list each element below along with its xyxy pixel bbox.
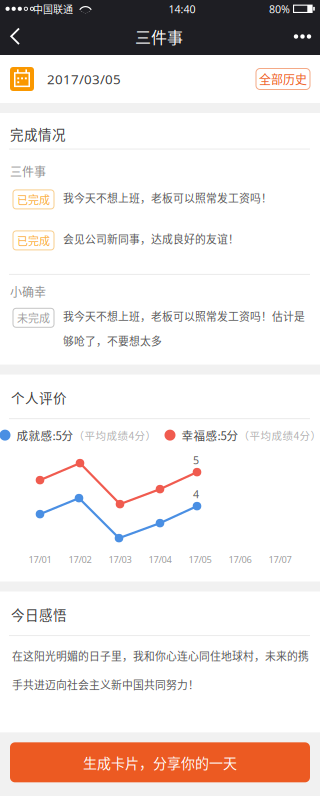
staticText: 17/06: [228, 553, 251, 565]
staticText: 三件事: [10, 162, 46, 180]
staticText: 17/03: [108, 553, 131, 565]
staticText: 已完成: [17, 232, 50, 248]
button[interactable]: 生成卡片，分享你的一天: [10, 742, 310, 782]
staticText: 未完成: [17, 310, 50, 326]
button[interactable]: 全部历史: [256, 68, 310, 89]
staticText: 个人评价: [11, 388, 67, 407]
staticText: 5: [193, 453, 199, 467]
staticText: 全部历史: [259, 70, 307, 88]
staticText: 17/05: [188, 553, 211, 565]
staticText: 成就感:5分: [16, 427, 73, 443]
staticText: 我今天不想上班，老板可以照常发工资吗！估计是够呛了，不要想太多: [63, 308, 305, 349]
staticText: 幸福感:5分: [181, 427, 238, 443]
button[interactable]: Back: [0, 18, 34, 55]
staticText: 已完成: [17, 191, 50, 207]
staticText: 17/02: [68, 553, 91, 565]
staticText: 4: [193, 487, 199, 501]
staticText: （平均成绩4分）: [238, 427, 320, 443]
staticText: 17/07: [268, 553, 291, 565]
staticText: 80%: [269, 2, 290, 16]
staticText: 我今天不想上班，老板可以照常发工资吗！: [63, 190, 272, 205]
staticText: 在这阳光明媚的日子里，我和你心连心同住地球村，未来的携手共进迈向社会主义新中国共…: [12, 648, 309, 692]
staticText: 2017/03/05: [47, 70, 121, 88]
staticText: 14:40: [168, 2, 195, 16]
staticText: 完成情况: [10, 124, 66, 143]
staticText: 生成卡片，分享你的一天: [83, 752, 237, 772]
staticText: 小确幸: [10, 283, 46, 300]
staticText: 今日感悟: [11, 604, 67, 624]
button[interactable]: More options: [284, 18, 320, 55]
staticText: 三件事: [135, 25, 183, 48]
staticText: 中国联通: [33, 2, 73, 16]
staticText: 17/04: [148, 553, 171, 565]
staticText: 会见公司新同事，达成良好的友谊！: [63, 231, 239, 246]
staticText: （平均成绩4分）: [73, 427, 156, 443]
staticText: 17/01: [28, 553, 51, 565]
